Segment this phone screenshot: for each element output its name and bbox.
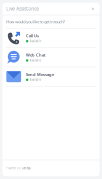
staticText: Send Message xyxy=(26,72,54,77)
staticText: Available xyxy=(30,39,42,43)
staticText: Available xyxy=(30,59,42,62)
staticText: Web Chat xyxy=(26,52,46,58)
staticText: ✕ xyxy=(91,6,94,11)
button[interactable]: Send Message xyxy=(2,67,99,86)
button[interactable]: Call Us xyxy=(2,29,99,47)
staticText: Available xyxy=(30,78,42,82)
staticText: Powered by xyxy=(6,166,20,170)
staticText: Live Assistance xyxy=(6,5,39,12)
staticText: Call Us xyxy=(26,33,39,38)
button[interactable]: Close xyxy=(90,6,96,12)
button[interactable]: Web Chat xyxy=(2,48,99,67)
staticText: Genesys xyxy=(22,166,31,170)
staticText: How would you like to get in touch? xyxy=(6,19,65,24)
